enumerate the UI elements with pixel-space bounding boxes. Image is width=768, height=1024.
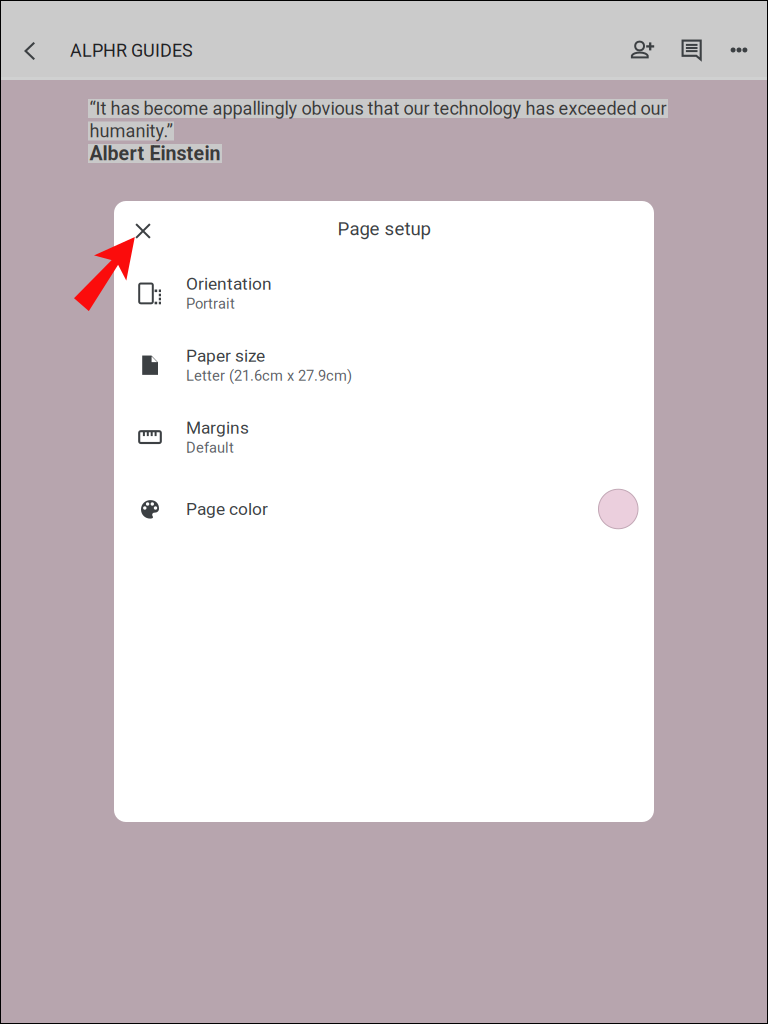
staticText: humanity.” bbox=[89, 120, 172, 142]
button[interactable]: Share bbox=[620, 27, 666, 73]
button[interactable]: Close bbox=[121, 209, 165, 253]
button[interactable]: Orientation bbox=[114, 257, 654, 329]
staticText: “It has become appallingly obvious that … bbox=[89, 98, 666, 119]
staticText: Albert Einstein bbox=[89, 142, 220, 165]
button[interactable]: Paper size bbox=[114, 329, 654, 401]
staticText: Orientation bbox=[186, 274, 272, 294]
staticText: Portrait bbox=[186, 295, 235, 312]
button[interactable]: Page color bbox=[114, 473, 654, 545]
button[interactable]: Back bbox=[8, 29, 52, 73]
button[interactable]: Margins bbox=[114, 401, 654, 473]
button[interactable]: More options bbox=[716, 27, 762, 73]
staticText: ALPHR GUIDES bbox=[70, 40, 193, 61]
staticText: Paper size bbox=[186, 346, 265, 366]
staticText: Page setup bbox=[337, 218, 430, 240]
staticText: Margins bbox=[186, 418, 249, 438]
button[interactable]: Comments bbox=[669, 27, 715, 73]
staticText: Page color bbox=[186, 499, 268, 519]
staticText: Letter (21.6cm x 27.9cm) bbox=[186, 367, 352, 384]
staticText: Default bbox=[186, 439, 234, 456]
